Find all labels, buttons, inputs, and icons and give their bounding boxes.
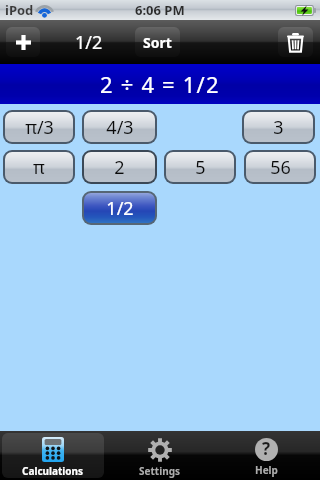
button[interactable]: Delete: [278, 27, 313, 57]
button[interactable]: 1/2: [84, 193, 155, 223]
staticText: 1/2: [106, 196, 134, 221]
staticText: 5: [195, 155, 206, 180]
staticText: Sort: [143, 33, 172, 52]
button[interactable]: Sort: [135, 27, 180, 57]
button[interactable]: 2: [84, 152, 155, 182]
staticText: Settings: [139, 464, 180, 478]
button[interactable]: 4/3: [84, 112, 155, 142]
button[interactable]: π/3: [5, 112, 73, 142]
button[interactable]: Settings: [106, 431, 213, 480]
button[interactable]: 5: [166, 152, 234, 182]
button[interactable]: 56: [246, 152, 314, 182]
button[interactable]: 3: [244, 112, 313, 142]
staticText: 2 ÷ 4 = 1/2: [100, 69, 220, 99]
staticText: 3: [273, 115, 284, 140]
staticText: 1/2: [75, 30, 103, 55]
staticText: 4/3: [106, 115, 134, 140]
staticText: π/3: [25, 115, 54, 140]
button[interactable]: Calculations: [0, 431, 106, 480]
button[interactable]: ?: [213, 431, 320, 480]
staticText: 56: [270, 155, 291, 180]
button[interactable]: Add: [6, 27, 40, 57]
staticText: 6:06 PM: [135, 1, 185, 19]
staticText: Help: [255, 463, 278, 477]
staticText: Calculations: [22, 464, 84, 478]
staticText: 2: [114, 155, 125, 180]
staticText: ?: [262, 437, 271, 460]
staticText: π: [33, 155, 45, 180]
button[interactable]: π: [5, 152, 73, 182]
staticText: iPod: [5, 1, 34, 19]
